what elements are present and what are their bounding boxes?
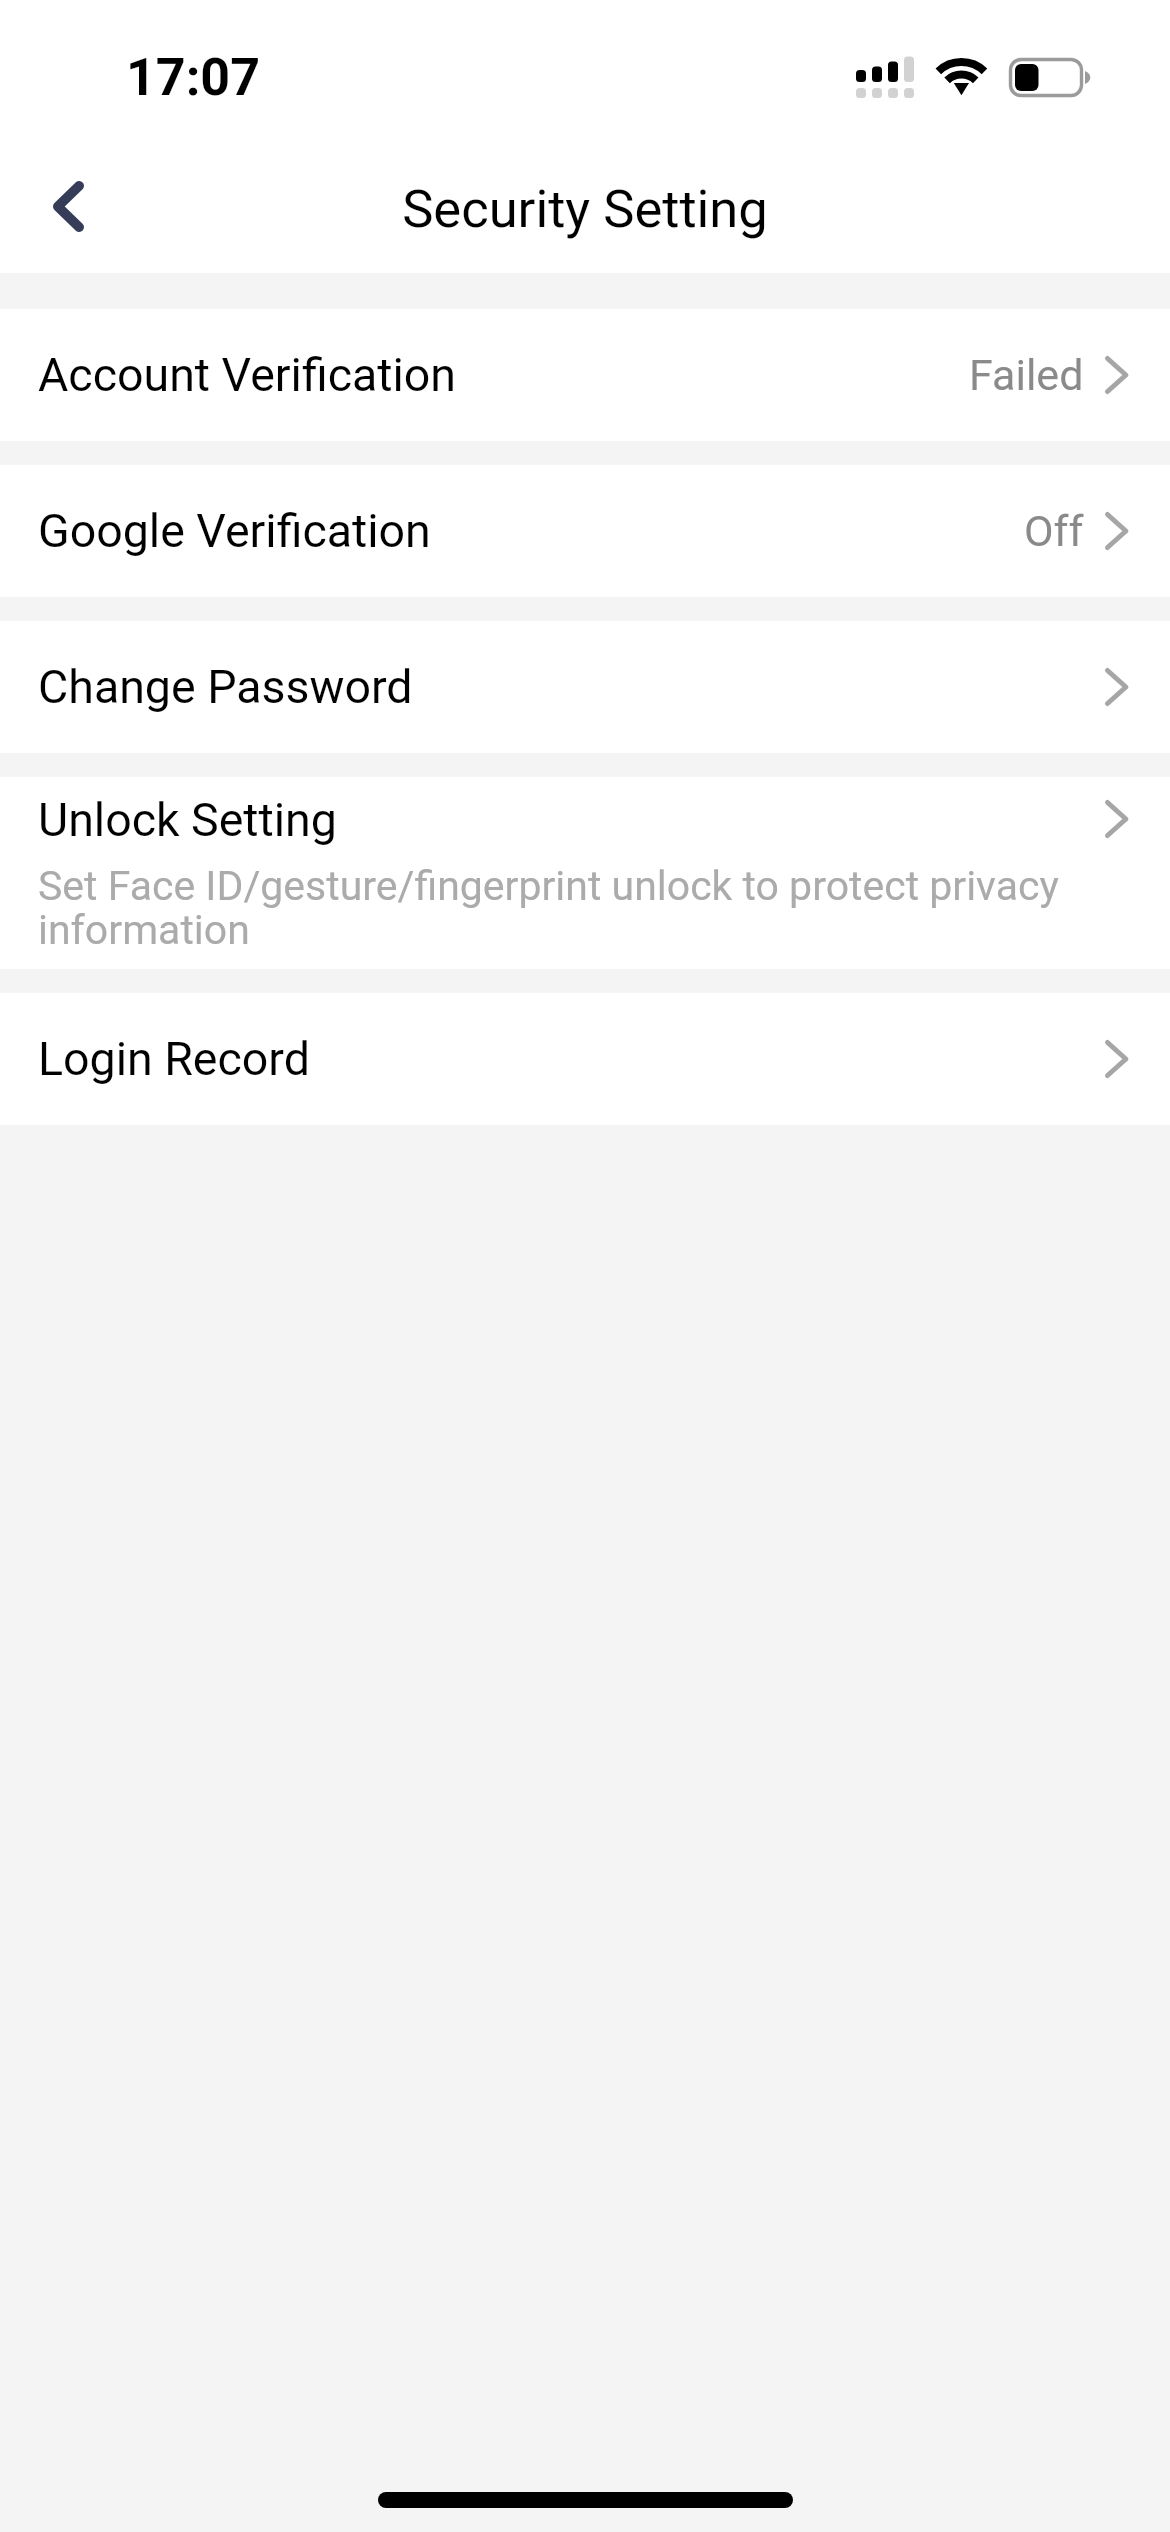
button[interactable]: Account Verification <box>0 309 1170 441</box>
button[interactable]: Unlock Setting <box>0 777 1170 969</box>
staticText: Off <box>1024 506 1084 556</box>
staticText: Failed <box>969 350 1084 400</box>
staticText: Security Setting <box>402 178 768 240</box>
staticText: Set Face ID/gesture/fingerprint unlock t… <box>38 862 1075 954</box>
staticText: 17:07 <box>126 47 261 108</box>
staticText: Unlock Setting <box>38 793 337 847</box>
button[interactable]: Change Password <box>0 621 1170 753</box>
staticText: Login Record <box>38 1032 310 1086</box>
staticText: Google Verification <box>38 504 431 558</box>
button[interactable]: Login Record <box>0 993 1170 1125</box>
button[interactable]: Back <box>0 140 136 273</box>
button[interactable]: Google Verification <box>0 465 1170 597</box>
staticText: Change Password <box>38 660 413 714</box>
staticText: Account Verification <box>38 348 457 402</box>
